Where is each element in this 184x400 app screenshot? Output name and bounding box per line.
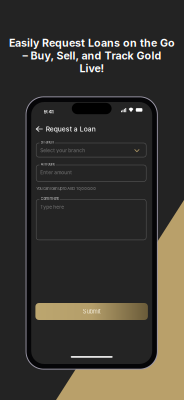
button[interactable]: Request a Loan [36,124,102,134]
button[interactable]: Submit [35,303,148,320]
staticText: Type here [40,204,64,210]
staticText: Amount [41,162,55,166]
staticText: 9:41 [43,108,53,115]
staticText: Easily Request Loans on the Go [9,36,175,49]
staticText: Enter amount [40,170,72,175]
staticText: Submit [83,308,101,315]
staticText: Branch [41,140,54,144]
staticText: You can loan up to AED 10,000.00 [36,186,96,191]
staticText: Live! [79,62,104,75]
staticText: – Buy, Sell, and Track Gold [22,49,161,62]
staticText: Select your branch [40,148,85,153]
staticText: Comment [41,196,59,201]
staticText: Request a Loan [46,125,96,133]
